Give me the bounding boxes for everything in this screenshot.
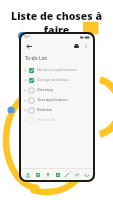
button[interactable]: Back xyxy=(25,42,33,50)
button[interactable]: Highlight xyxy=(63,171,70,178)
staticText: 9:41 xyxy=(24,35,30,39)
staticText: Design interface xyxy=(37,77,70,83)
button[interactable]: Undo xyxy=(83,171,90,178)
button[interactable]: Table xyxy=(34,171,41,178)
button[interactable]: Print xyxy=(72,42,80,50)
staticText: To-do List xyxy=(25,55,48,62)
staticText: New task xyxy=(37,117,55,123)
button[interactable]: New task xyxy=(21,115,93,125)
button[interactable]: Link xyxy=(73,171,80,178)
button[interactable]: Design interface xyxy=(21,75,93,85)
staticText: Test application xyxy=(37,97,68,103)
staticText: Develop xyxy=(37,87,54,93)
button[interactable]: Develop xyxy=(21,85,93,95)
button[interactable]: Test application xyxy=(21,95,93,105)
button[interactable]: Release xyxy=(21,105,93,115)
staticText: Liste de choses à faire xyxy=(0,9,113,37)
button[interactable]: Text color xyxy=(24,171,31,178)
button[interactable]: Checklist xyxy=(54,171,61,178)
staticText: Release xyxy=(37,107,53,113)
button[interactable]: Insert xyxy=(44,171,51,178)
button[interactable]: Write a requirement xyxy=(21,65,93,75)
staticText: Write a requirement xyxy=(37,67,77,73)
button[interactable]: More options xyxy=(82,42,89,49)
